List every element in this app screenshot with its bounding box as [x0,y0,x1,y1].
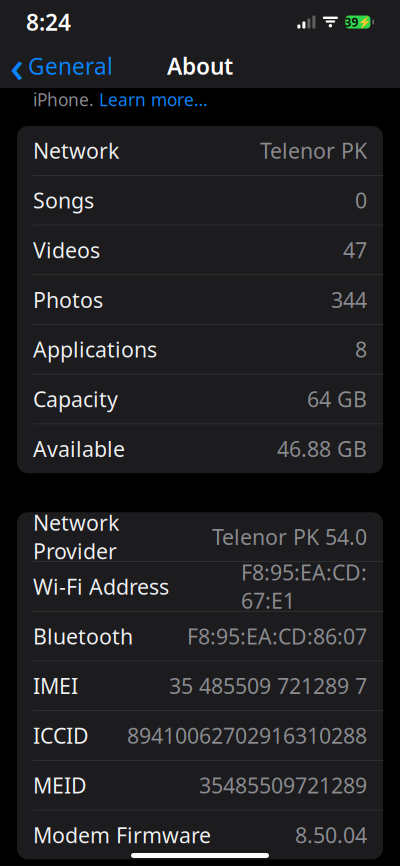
staticText: About [167,51,233,81]
staticText: Learn more… [99,88,208,111]
staticText: Photos [33,285,103,314]
staticText: Modem Firmware [33,821,211,849]
staticText: Applications [33,335,157,363]
button[interactable]: ICCID [17,711,383,760]
button[interactable]: Network Provider [17,512,383,561]
staticText: 8.50.04 [295,821,367,849]
button[interactable]: Learn more… [99,88,208,111]
button[interactable]: Capacity [17,374,383,423]
staticText: 0 [355,186,367,214]
staticText: 344 [331,285,367,314]
button[interactable]: Videos [17,225,383,274]
staticText: 35 485509 721289 7 [169,672,367,700]
staticText: Capacity [33,385,118,413]
button[interactable]: Songs [17,176,383,225]
staticText: Wi-Fi Address [33,572,169,600]
staticText: Network Provider [33,508,119,565]
staticText: 35485509721289 [199,771,367,799]
staticText: iPhone. [33,88,99,111]
button[interactable]: Wi-Fi Address [17,562,383,611]
staticText: Songs [33,186,94,214]
staticText: ‹ [10,38,24,94]
staticText: 89410062702916310288 [127,721,367,750]
staticText: ICCID [33,721,89,750]
staticText: 46.88 GB [277,434,367,463]
button[interactable]: Photos [17,275,383,324]
button[interactable]: IMEI [17,661,383,710]
button[interactable]: Available [17,424,383,473]
staticText: MEID [33,771,87,799]
button[interactable]: Network [17,126,383,175]
staticText: 64 GB [307,385,367,413]
button[interactable]: Bluetooth [17,612,383,661]
staticText: Bluetooth [33,622,133,650]
staticText: 8:24 [26,7,71,37]
staticText: IMEI [33,672,78,700]
staticText: F8:95:EA:CD:67:E1 [241,558,367,615]
staticText: ⚡ [358,16,371,28]
staticText: 47 [343,236,367,264]
staticText: Videos [33,236,100,264]
staticText: Available [33,434,125,463]
button[interactable]: Modem Firmware [17,810,383,859]
button[interactable]: MEID [17,761,383,810]
staticText: 8 [355,335,367,363]
button[interactable]: Applications [17,325,383,374]
staticText: Telenor PK 54.0 [212,522,367,551]
staticText: Telenor PK [260,136,367,165]
staticText: 39 [344,14,358,30]
staticText: General [28,51,113,81]
staticText: Network [33,136,119,165]
button[interactable]: ‹ [0,44,123,88]
staticText: F8:95:EA:CD:86:07 [187,622,367,650]
